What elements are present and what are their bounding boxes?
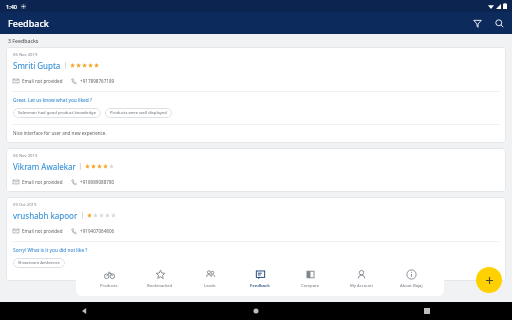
- staticText: 09 Oct 2019: [13, 202, 37, 208]
- button[interactable]: Back: [75, 302, 95, 320]
- staticText: Great. Let us know what you liked ?: [13, 97, 93, 104]
- button[interactable]: 06 Nov 2019: [6, 47, 506, 143]
- staticText: +919407064806: [80, 228, 115, 234]
- staticText: 06 Nov 2019: [13, 153, 38, 159]
- button[interactable]: Products were well displayed: [105, 108, 172, 118]
- staticText: My Account: [350, 283, 373, 289]
- staticText: 1:40: [6, 3, 17, 10]
- button[interactable]: Leads: [187, 264, 233, 296]
- staticText: Feedback: [8, 17, 49, 29]
- button[interactable]: About Bajaj: [388, 264, 434, 296]
- button[interactable]: Filter: [468, 14, 486, 32]
- button[interactable]: 06 Nov 2019: [6, 148, 506, 192]
- staticText: Showroom Ambience: [18, 260, 60, 266]
- button[interactable]: Showroom Ambience: [13, 258, 65, 268]
- staticText: +918989088780: [80, 179, 115, 185]
- staticText: 3 Feedbacks: [8, 37, 39, 44]
- staticText: Email not provided: [22, 228, 63, 234]
- staticText: Feedback: [250, 283, 270, 289]
- staticText: Products: [100, 283, 118, 289]
- staticText: Leads: [204, 283, 216, 289]
- staticText: About Bajaj: [400, 283, 423, 289]
- staticText: Products were well displayed: [110, 110, 167, 116]
- button[interactable]: Recents: [417, 302, 437, 320]
- staticText: vrushabh kapoor: [13, 210, 78, 221]
- button[interactable]: 09 Oct 2019: [6, 197, 506, 281]
- staticText: Sorry! What is it you did not like ?: [13, 247, 88, 254]
- staticText: Compare: [301, 283, 320, 289]
- button[interactable]: My Account: [338, 264, 384, 296]
- staticText: Nice interface for user and new experien…: [13, 130, 107, 136]
- button[interactable]: Compare: [287, 264, 333, 296]
- staticText: Vikram Awalekar: [13, 161, 76, 172]
- button[interactable]: Products: [86, 264, 132, 296]
- staticText: Bookmarked: [147, 283, 173, 289]
- staticText: Smriti Gupta: [13, 60, 61, 71]
- button[interactable]: Home: [246, 302, 266, 320]
- staticText: +917898767189: [80, 78, 115, 84]
- button[interactable]: Salesman had good product knowledge: [13, 108, 101, 118]
- staticText: Email not provided: [22, 78, 63, 84]
- button[interactable]: Add feedback: [476, 267, 502, 293]
- button[interactable]: Search: [490, 14, 508, 32]
- button[interactable]: Bookmarked: [137, 264, 183, 296]
- staticText: Email not provided: [22, 179, 63, 185]
- button[interactable]: Feedback: [237, 264, 283, 296]
- staticText: Salesman had good product knowledge: [18, 110, 96, 116]
- staticText: 06 Nov 2019: [13, 52, 38, 58]
